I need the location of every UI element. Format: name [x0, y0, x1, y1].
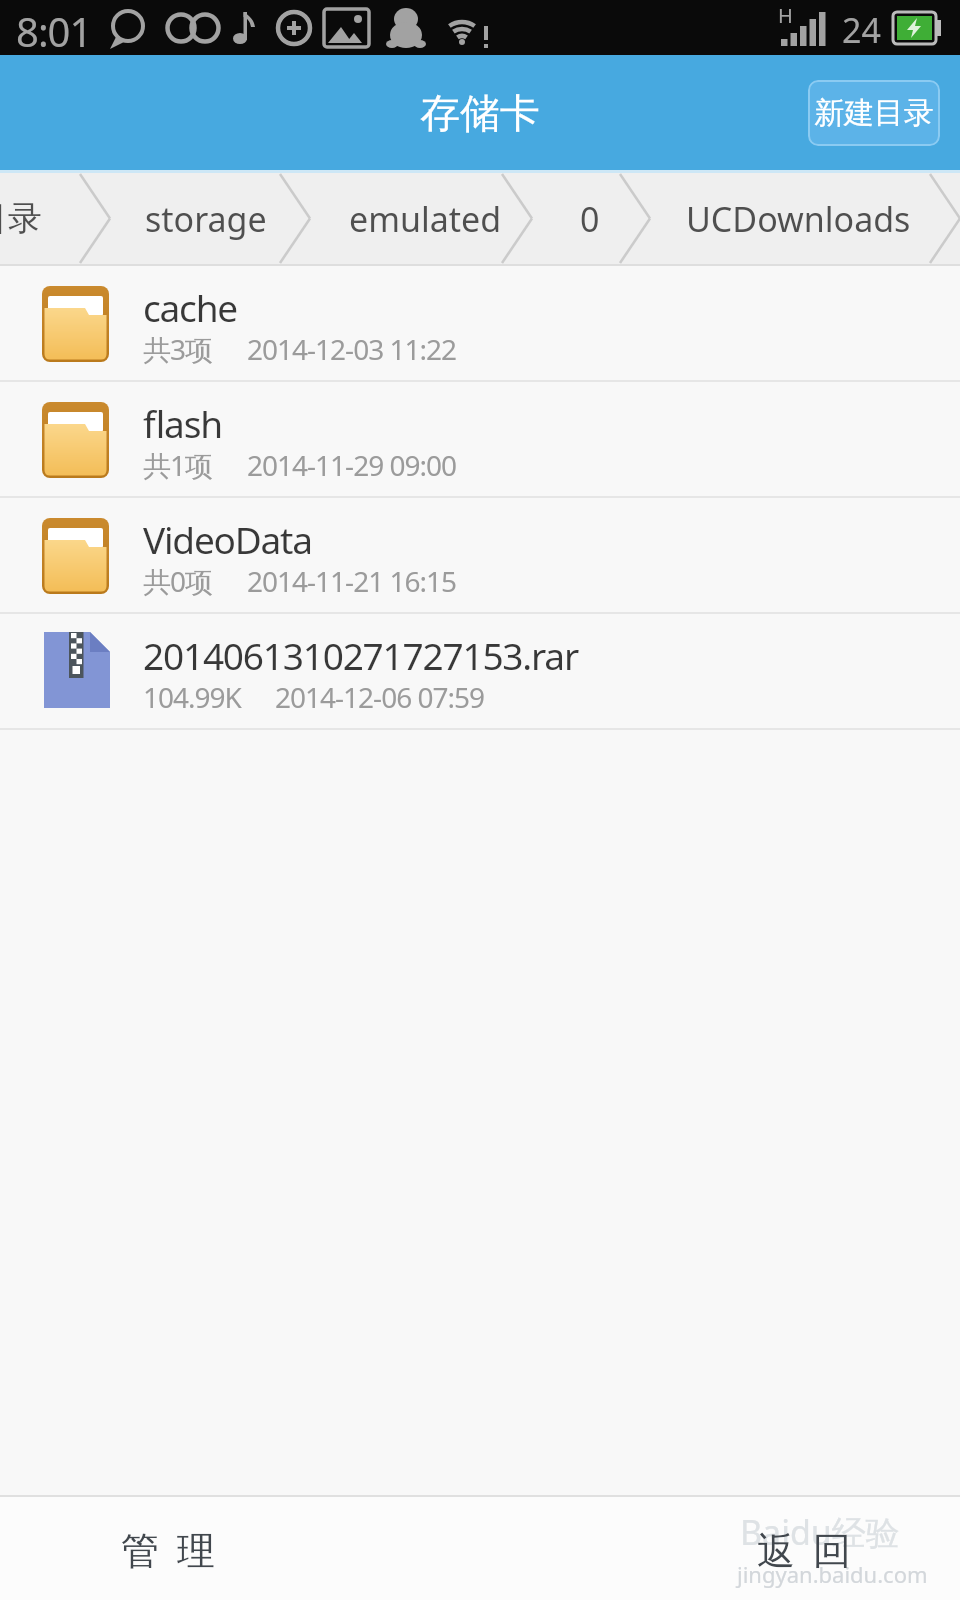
staticText: VideoData: [143, 514, 312, 564]
staticText: storage: [145, 196, 267, 242]
staticText: 共3项: [143, 330, 213, 368]
staticText: 管 理: [121, 1523, 219, 1575]
staticText: UCDownloads: [686, 196, 911, 242]
button[interactable]: 2014061310271727153.rar: [0, 614, 960, 728]
button[interactable]: emulated: [349, 173, 502, 264]
button[interactable]: cache: [0, 266, 960, 380]
staticText: 24: [842, 7, 881, 53]
staticText: H: [778, 2, 793, 29]
staticText: 104.99K: [143, 678, 241, 716]
staticText: 2014-11-29 09:00: [247, 446, 457, 484]
button[interactable]: 0: [580, 173, 600, 264]
staticText: cache: [143, 282, 238, 332]
button[interactable]: flash: [0, 382, 960, 496]
staticText: 目录: [0, 197, 42, 240]
button[interactable]: UCDownloads: [686, 173, 911, 264]
button[interactable]: 新建目录: [808, 80, 940, 146]
button[interactable]: 返 回: [736, 1497, 876, 1600]
staticText: 新建目录: [814, 94, 934, 132]
button[interactable]: 管 理: [100, 1497, 240, 1600]
button[interactable]: storage: [145, 173, 267, 264]
staticText: 0: [580, 196, 600, 242]
staticText: 返 回: [757, 1523, 855, 1575]
staticText: 2014-12-03 11:22: [247, 330, 457, 368]
button[interactable]: VideoData: [0, 498, 960, 612]
staticText: 2014061310271727153.rar: [143, 630, 579, 680]
staticText: emulated: [349, 196, 502, 242]
staticText: 2014-12-06 07:59: [275, 678, 485, 716]
staticText: Baidu经验: [740, 1509, 900, 1555]
staticText: 2014-11-21 16:15: [247, 562, 457, 600]
staticText: 8:01: [16, 4, 92, 58]
staticText: 存储卡: [420, 88, 540, 138]
staticText: flash: [143, 398, 222, 448]
staticText: 共1项: [143, 446, 213, 484]
staticText: 共0项: [143, 562, 213, 600]
button[interactable]: 目录: [0, 173, 42, 264]
staticText: jingyan.baidu.com: [737, 1559, 928, 1589]
